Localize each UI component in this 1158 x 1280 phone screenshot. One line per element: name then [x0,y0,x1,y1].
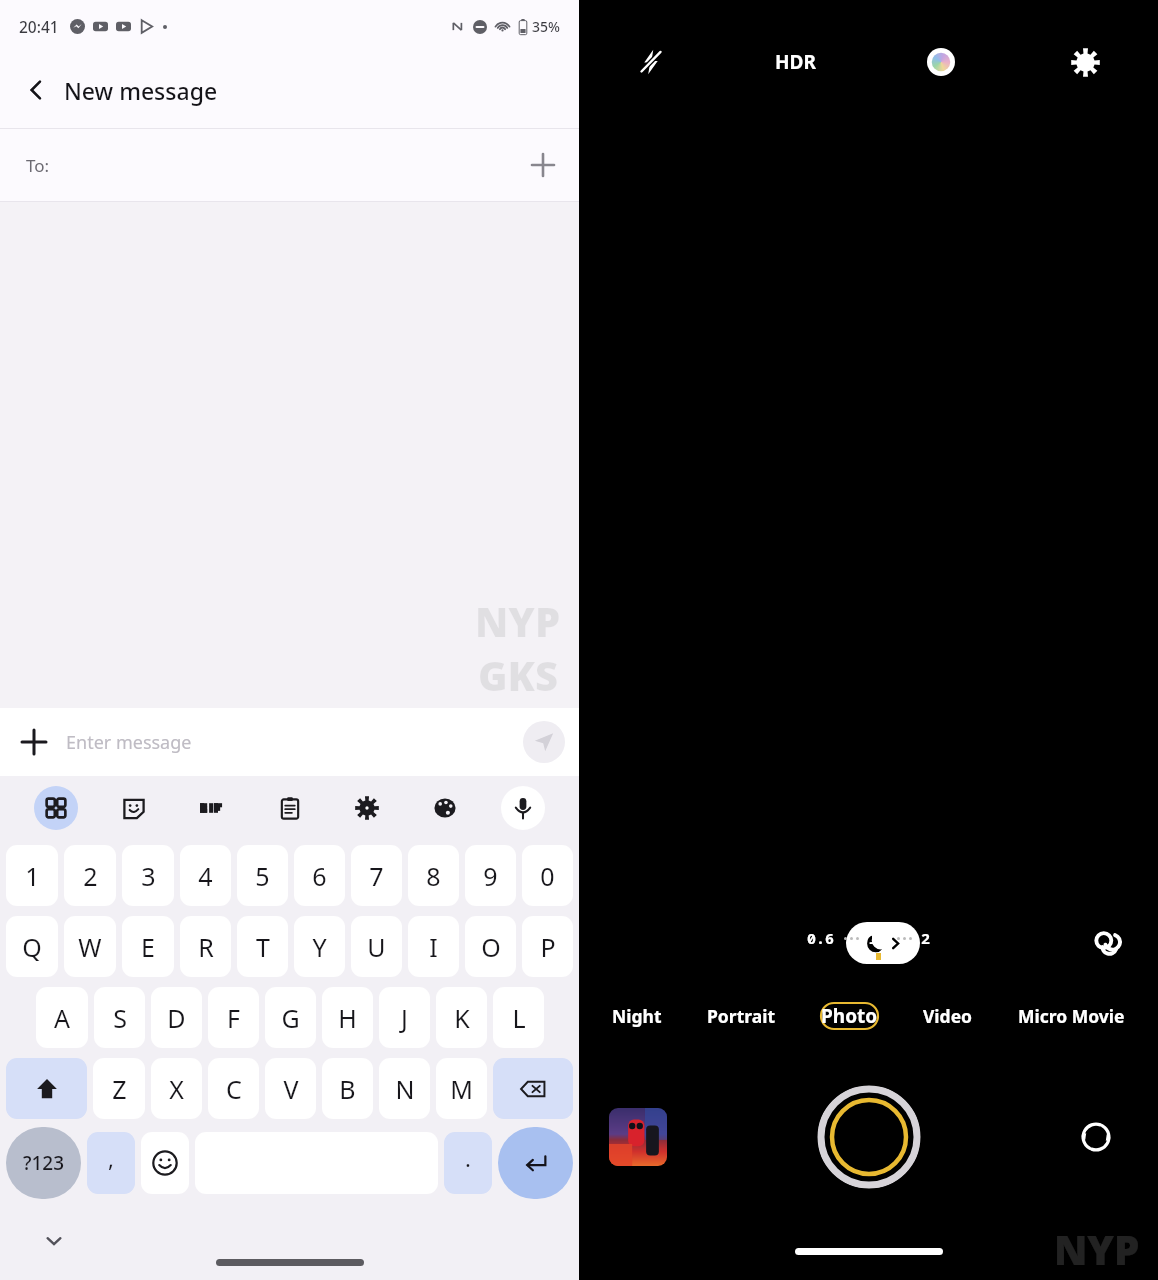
button[interactable]: O [465,916,516,977]
staticText: 0 [540,859,555,893]
button[interactable]: AI lens [1086,921,1130,965]
button[interactable]: Hide keyboard [34,1221,74,1261]
staticText: 20:41 [19,16,59,37]
button[interactable]: X [151,1058,202,1119]
button[interactable]: , [87,1132,135,1194]
button[interactable]: Add recipient [517,139,569,191]
button[interactable]: N [379,1058,430,1119]
button[interactable]: Gallery [609,1108,667,1166]
button[interactable]: 9 [465,845,516,906]
staticText: Z [112,1072,127,1106]
button[interactable]: K [436,987,487,1048]
button[interactable]: Z [93,1058,145,1119]
button[interactable]: Voice input [501,786,545,830]
button[interactable]: U [351,916,402,977]
button[interactable]: Keyboard settings [345,786,389,830]
staticText: To: [26,154,50,177]
button[interactable]: C [208,1058,259,1119]
button[interactable]: To: [0,129,579,201]
staticText: 8 [426,859,441,893]
staticText: GKS [478,648,559,702]
button[interactable]: F [208,987,259,1048]
staticText: 9 [483,859,498,893]
button[interactable]: Attach [6,714,62,770]
staticText: B [339,1072,356,1106]
button[interactable]: Settings [1013,0,1158,124]
button[interactable]: Night [600,998,674,1034]
staticText: R [198,930,214,964]
staticText: C [226,1072,242,1106]
button[interactable]: 6 [294,845,345,906]
staticText: . [465,1143,471,1173]
staticText: 1x [868,927,888,949]
button[interactable]: Night mode [846,922,920,964]
button[interactable]: Micro Movie [1006,998,1137,1034]
button[interactable]: Themes [423,786,467,830]
staticText: P [540,930,556,964]
button[interactable]: Stickers [112,786,156,830]
button[interactable]: 0 [522,845,573,906]
button[interactable]: Clipboard [268,786,312,830]
button[interactable]: A [36,987,88,1048]
staticText: H [338,1001,357,1035]
button[interactable]: Enter [498,1127,573,1199]
button[interactable]: Flash off [579,0,723,124]
button[interactable]: D [151,987,202,1048]
staticText: F [227,1001,240,1035]
button[interactable]: E [122,916,174,977]
button[interactable]: P [522,916,573,977]
button[interactable]: Y [294,916,345,977]
button[interactable]: 2 [64,845,116,906]
button[interactable]: HDR [723,0,868,124]
button[interactable]: Filters [868,0,1013,124]
button[interactable]: 7 [351,845,402,906]
staticText: 1 [25,859,40,893]
button[interactable]: I [408,916,459,977]
staticText: I [429,930,438,964]
button[interactable]: T [237,916,288,977]
staticText: 2 [921,928,931,948]
staticText: J [401,1001,408,1035]
button[interactable]: Apps [34,786,78,830]
button[interactable]: GIF [190,786,234,830]
button[interactable]: W [64,916,116,977]
button[interactable]: Backspace [493,1058,573,1119]
button[interactable]: 8 [408,845,459,906]
button[interactable]: 3 [122,845,174,906]
staticText: Portrait [707,1004,776,1028]
staticText: W [78,930,102,964]
button[interactable]: ?123 [6,1127,81,1199]
button[interactable]: M [436,1058,487,1119]
staticText: O [481,930,501,964]
button[interactable]: L [493,987,544,1048]
button[interactable]: B [322,1058,373,1119]
button[interactable]: Photo [809,997,890,1035]
button[interactable]: Send [523,721,565,763]
button[interactable]: 5 [237,845,288,906]
staticText: , [108,1143,114,1173]
button[interactable]: Q [6,916,58,977]
staticText: 6 [312,859,327,893]
button[interactable]: J [379,987,430,1048]
staticText: Y [312,930,327,964]
staticText: 0.6 [807,928,835,948]
button[interactable]: Emoji [141,1132,189,1194]
staticText: Micro Movie [1018,1004,1125,1028]
button[interactable]: G [265,987,316,1048]
button[interactable]: Switch camera [1070,1111,1122,1163]
staticText: M [450,1072,473,1106]
button[interactable]: Video [911,998,985,1034]
button[interactable]: V [265,1058,316,1119]
button[interactable]: S [94,987,145,1048]
button[interactable]: 4 [180,845,231,906]
button[interactable]: Portrait [695,998,788,1034]
button[interactable]: Shift [6,1058,87,1119]
button[interactable]: . [444,1132,492,1194]
button[interactable]: Shutter [817,1085,921,1189]
button[interactable]: Back [8,62,64,118]
button[interactable]: 1 [6,845,58,906]
button[interactable]: R [180,916,231,977]
staticText: E [141,930,155,964]
button[interactable]: H [322,987,373,1048]
